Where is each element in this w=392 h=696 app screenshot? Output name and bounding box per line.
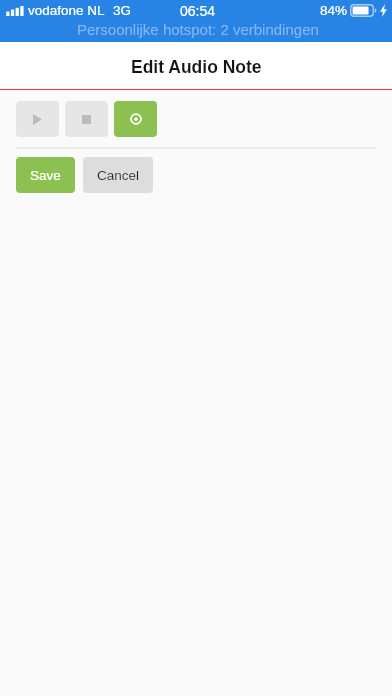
staticText: Save xyxy=(30,168,61,183)
button[interactable]: Cancel xyxy=(83,157,153,193)
staticText: Cancel xyxy=(97,168,140,183)
staticText: Edit Audio Note xyxy=(131,57,262,77)
button[interactable]: Record xyxy=(114,101,157,137)
button[interactable]: Play xyxy=(16,101,59,137)
staticText: Persoonlijke hotspot: 2 verbindingen xyxy=(77,21,319,38)
button[interactable]: Stop xyxy=(65,101,108,137)
button[interactable]: Save xyxy=(16,157,75,193)
staticText: 84% xyxy=(320,3,348,18)
staticText: 3G xyxy=(113,3,132,18)
staticText: 06:54 xyxy=(180,3,216,19)
staticText: vodafone NL xyxy=(28,3,105,18)
